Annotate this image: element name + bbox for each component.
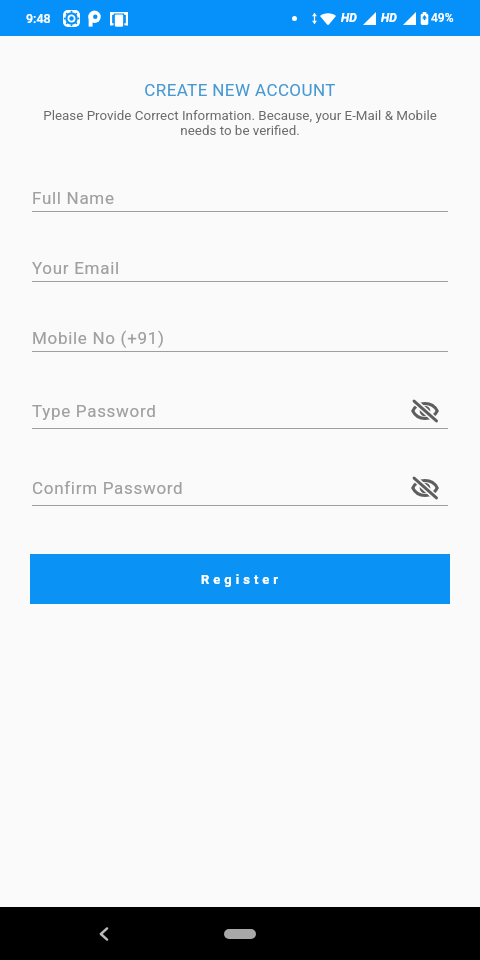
staticText: Mobile No (+91) — [32, 328, 165, 348]
button[interactable]: Full Name — [0, 142, 480, 212]
button[interactable]: Home — [210, 919, 270, 949]
staticText: Please Provide Correct Information. Beca… — [0, 108, 480, 138]
staticText: Your Email — [32, 258, 120, 278]
button[interactable]: Back — [86, 916, 122, 952]
staticText: HD — [381, 11, 397, 25]
staticText: Type Password — [32, 401, 157, 421]
staticText: 49% — [431, 11, 454, 25]
staticText: Full Name — [32, 188, 115, 208]
button[interactable]: Show password — [408, 394, 442, 428]
staticText: 9:48 — [26, 11, 51, 26]
button[interactable]: Confirm Password — [0, 429, 480, 506]
button[interactable]: Your Email — [0, 212, 480, 282]
staticText: CREATE NEW ACCOUNT — [0, 80, 480, 100]
button[interactable]: Show password — [408, 471, 442, 505]
button[interactable]: Register — [30, 554, 450, 604]
button[interactable]: Type Password — [0, 352, 480, 429]
button[interactable]: Mobile No (+91) — [0, 282, 480, 352]
staticText: Register — [201, 572, 283, 587]
staticText: HD — [341, 11, 357, 25]
staticText: Confirm Password — [32, 478, 184, 498]
